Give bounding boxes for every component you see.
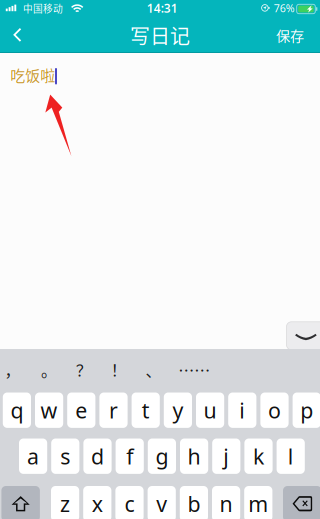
staticText: 保存 [276,25,304,45]
staticText: ？ [76,358,92,381]
button[interactable]: q [3,392,31,428]
button[interactable]: Back [0,19,34,51]
button[interactable]: s [51,438,79,474]
staticText: n [220,489,233,518]
staticText: 、 [146,358,162,381]
button[interactable]: u [196,392,224,428]
staticText: d [91,442,104,470]
button[interactable]: r [99,392,128,428]
staticText: y [172,396,183,424]
button[interactable]: h [180,438,208,474]
staticText: b [187,489,200,518]
button[interactable]: p [293,392,320,428]
button[interactable]: Shift [1,486,40,519]
staticText: w [41,396,58,424]
staticText: z [60,489,70,518]
staticText: c [124,489,134,518]
button[interactable]: o [260,392,289,428]
button[interactable]: t [132,392,160,428]
staticText: 写日记 [130,20,190,49]
button[interactable]: v [148,486,176,519]
staticText: 76% [274,1,295,15]
button[interactable]: w [35,392,63,428]
staticText: m [248,489,268,518]
staticText: 吃饭啦 [10,64,55,86]
staticText: e [75,396,87,424]
button[interactable]: Delete [283,486,320,519]
button[interactable]: 、 [137,354,171,384]
staticText: 14:31 [147,0,178,16]
button[interactable]: a [19,438,47,474]
staticText: o [268,396,281,424]
staticText: g [155,442,168,470]
staticText: i [239,396,245,424]
staticText: ， [5,358,21,381]
button[interactable]: n [212,486,240,519]
staticText: ！ [111,358,127,381]
button[interactable]: y [164,392,192,428]
button[interactable]: l [277,438,305,474]
button[interactable]: e [67,392,95,428]
staticText: 。 [41,358,57,381]
button[interactable]: d [83,438,112,474]
button[interactable]: i [228,392,256,428]
staticText: k [253,442,264,470]
staticText: f [126,442,133,470]
button[interactable]: Hide keyboard [286,322,320,350]
button[interactable]: g [148,438,176,474]
button[interactable]: b [180,486,208,519]
staticText: l [288,442,294,470]
button[interactable]: m [244,486,272,519]
staticText: j [223,442,229,470]
button[interactable]: 。 [32,354,66,384]
staticText: p [300,396,313,424]
button[interactable]: j [212,438,240,474]
button[interactable]: ？ [67,354,101,384]
staticText: a [27,442,39,470]
staticText: u [204,396,217,424]
staticText: x [92,489,103,518]
button[interactable]: ， [0,354,30,384]
button[interactable]: x [83,486,111,519]
staticText: h [188,442,201,470]
button[interactable]: 保存 [265,19,315,51]
staticText: t [142,396,150,424]
staticText: r [109,396,118,424]
button[interactable]: c [115,486,144,519]
button[interactable]: …… [177,354,211,384]
button[interactable]: ！ [102,354,136,384]
button[interactable]: f [116,438,144,474]
staticText: 中国移动 [23,1,63,15]
staticText: …… [178,358,210,381]
button[interactable]: k [244,438,273,474]
staticText: q [10,396,23,424]
staticText: s [60,442,70,470]
staticText: v [156,489,167,518]
button[interactable]: z [51,486,79,519]
